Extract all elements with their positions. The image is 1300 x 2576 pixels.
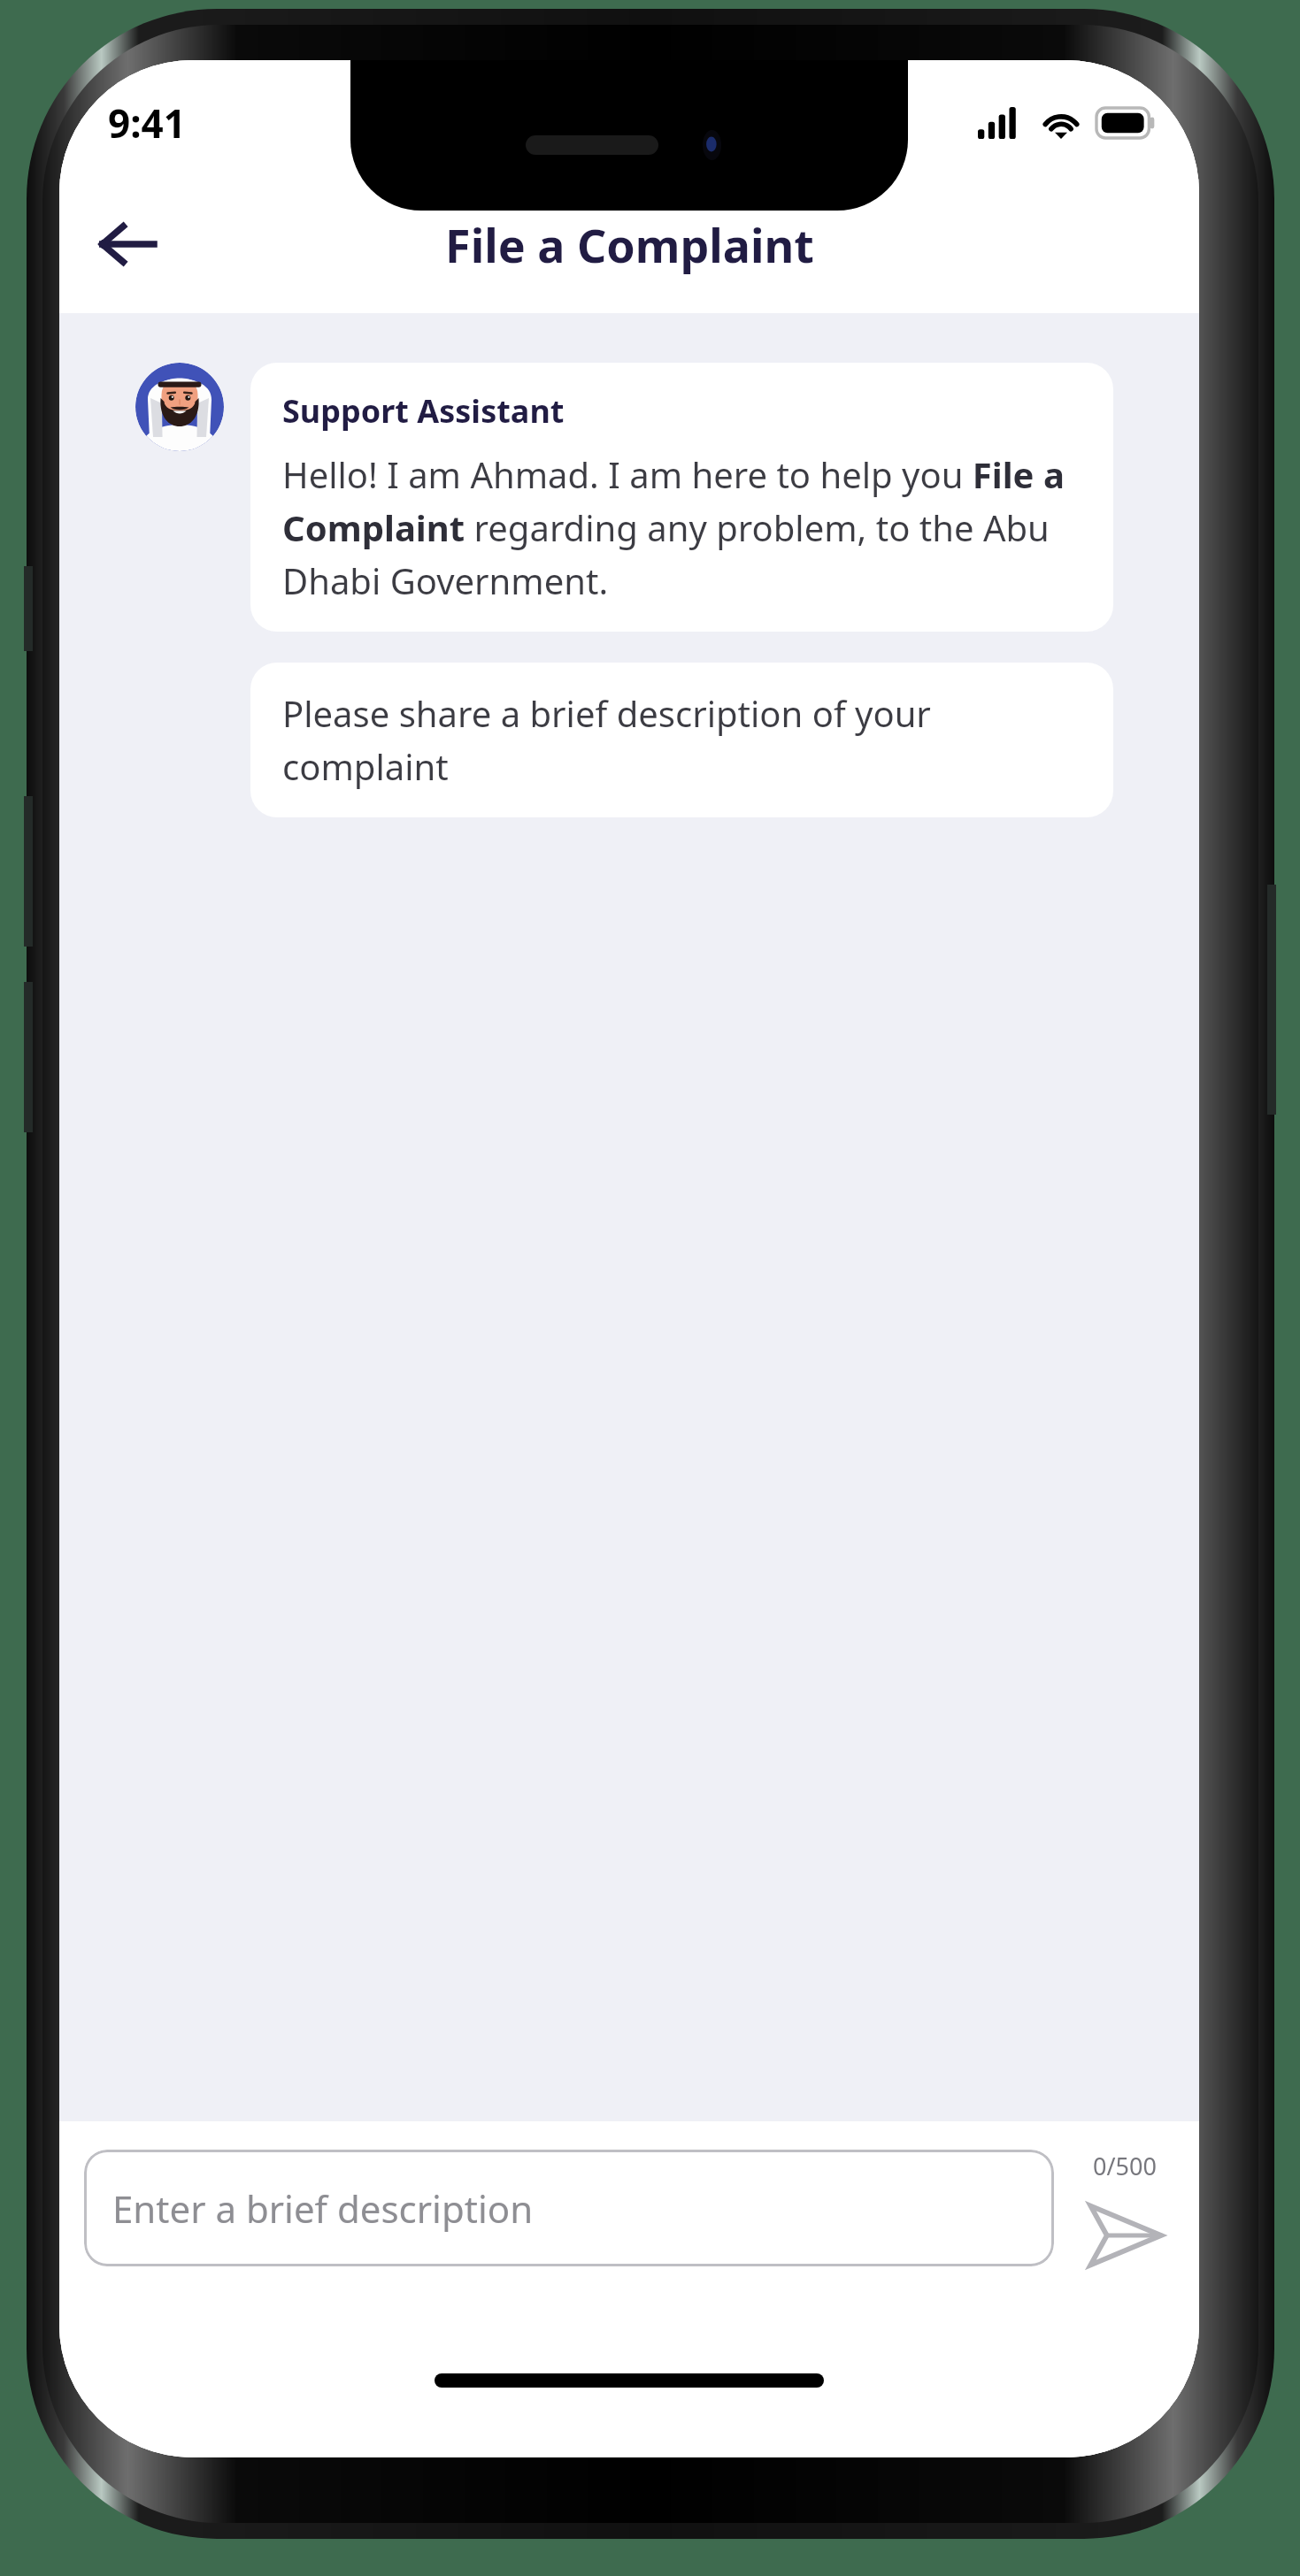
- staticText: 9:41: [108, 96, 186, 149]
- staticText: Enter a brief description: [112, 2183, 534, 2234]
- button[interactable]: Support Assistant: [250, 363, 1113, 632]
- button[interactable]: Back: [75, 193, 178, 295]
- staticText: Hello! I am Ahmad. I am here to help you…: [282, 450, 1081, 605]
- button[interactable]: Enter a brief description: [84, 2150, 1054, 2266]
- staticText: Support Assistant: [282, 389, 565, 433]
- staticText: File a Complaint: [445, 213, 814, 276]
- button[interactable]: Send: [1082, 2193, 1167, 2278]
- staticText: Please share a brief description of your…: [282, 689, 1081, 791]
- button[interactable]: Please share a brief description of your…: [250, 663, 1113, 817]
- staticText: 0/500: [1093, 2150, 1157, 2182]
